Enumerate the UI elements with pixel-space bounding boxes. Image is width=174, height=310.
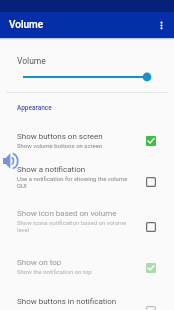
staticText: Show icons notification based on volume …: [17, 219, 133, 233]
button[interactable]: Show a notification: [0, 157, 174, 201]
staticText: Volume: [17, 56, 46, 66]
button[interactable]: Toggle setting: [141, 258, 161, 278]
button[interactable]: Show on top: [0, 250, 174, 288]
button[interactable]: Show buttons on screen: [0, 124, 174, 157]
other: Volume: [3, 153, 19, 169]
button[interactable]: Show buttons in notification: [0, 288, 174, 310]
staticText: Show the notification on top: [17, 268, 92, 275]
staticText: Volume: [9, 19, 44, 31]
staticText: Show buttons on screen: [17, 132, 103, 141]
staticText: Use a notification for showing the volum…: [17, 175, 133, 189]
button[interactable]: Toggle setting: [141, 131, 161, 151]
button[interactable]: Toggle setting: [141, 301, 161, 310]
button[interactable]: Toggle setting: [141, 172, 161, 192]
staticText: Show on top: [17, 258, 62, 267]
staticText: Appearance: [17, 104, 52, 112]
staticText: Show volume buttons on screen: [17, 142, 103, 149]
button[interactable]: More options: [148, 12, 174, 38]
button[interactable]: Toggle setting: [141, 217, 161, 237]
staticText: Show icon based on volume: [17, 209, 117, 218]
staticText: Show buttons in notification: [17, 297, 117, 306]
button[interactable]: Show icon based on volume: [0, 201, 174, 250]
staticText: Show a notification: [17, 165, 86, 174]
